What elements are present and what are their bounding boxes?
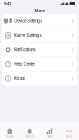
staticText: About (14, 76, 25, 81)
staticText: More (34, 8, 44, 13)
staticText: More (66, 135, 73, 138)
button[interactable]: Alarm Settings (2, 28, 77, 43)
staticText: 9:41 (4, 1, 11, 6)
button[interactable]: More (59, 128, 79, 138)
button[interactable]: Stats (39, 128, 59, 138)
button[interactable]: Device Settings (2, 14, 77, 28)
button[interactable]: Notifications (2, 43, 77, 57)
staticText: Help Center (14, 62, 36, 67)
staticText: ? (7, 61, 9, 68)
staticText: Alarm Settings (14, 33, 42, 38)
staticText: Notifications (14, 47, 36, 52)
button[interactable]: About (2, 72, 77, 86)
staticText: Device Settings (14, 18, 42, 23)
staticText: Home (6, 135, 14, 138)
button[interactable]: Home (0, 128, 20, 138)
staticText: Stats (47, 135, 52, 138)
button[interactable]: Alerts (20, 128, 40, 138)
staticText: Alerts (26, 135, 34, 138)
button[interactable]: ? (2, 57, 77, 72)
